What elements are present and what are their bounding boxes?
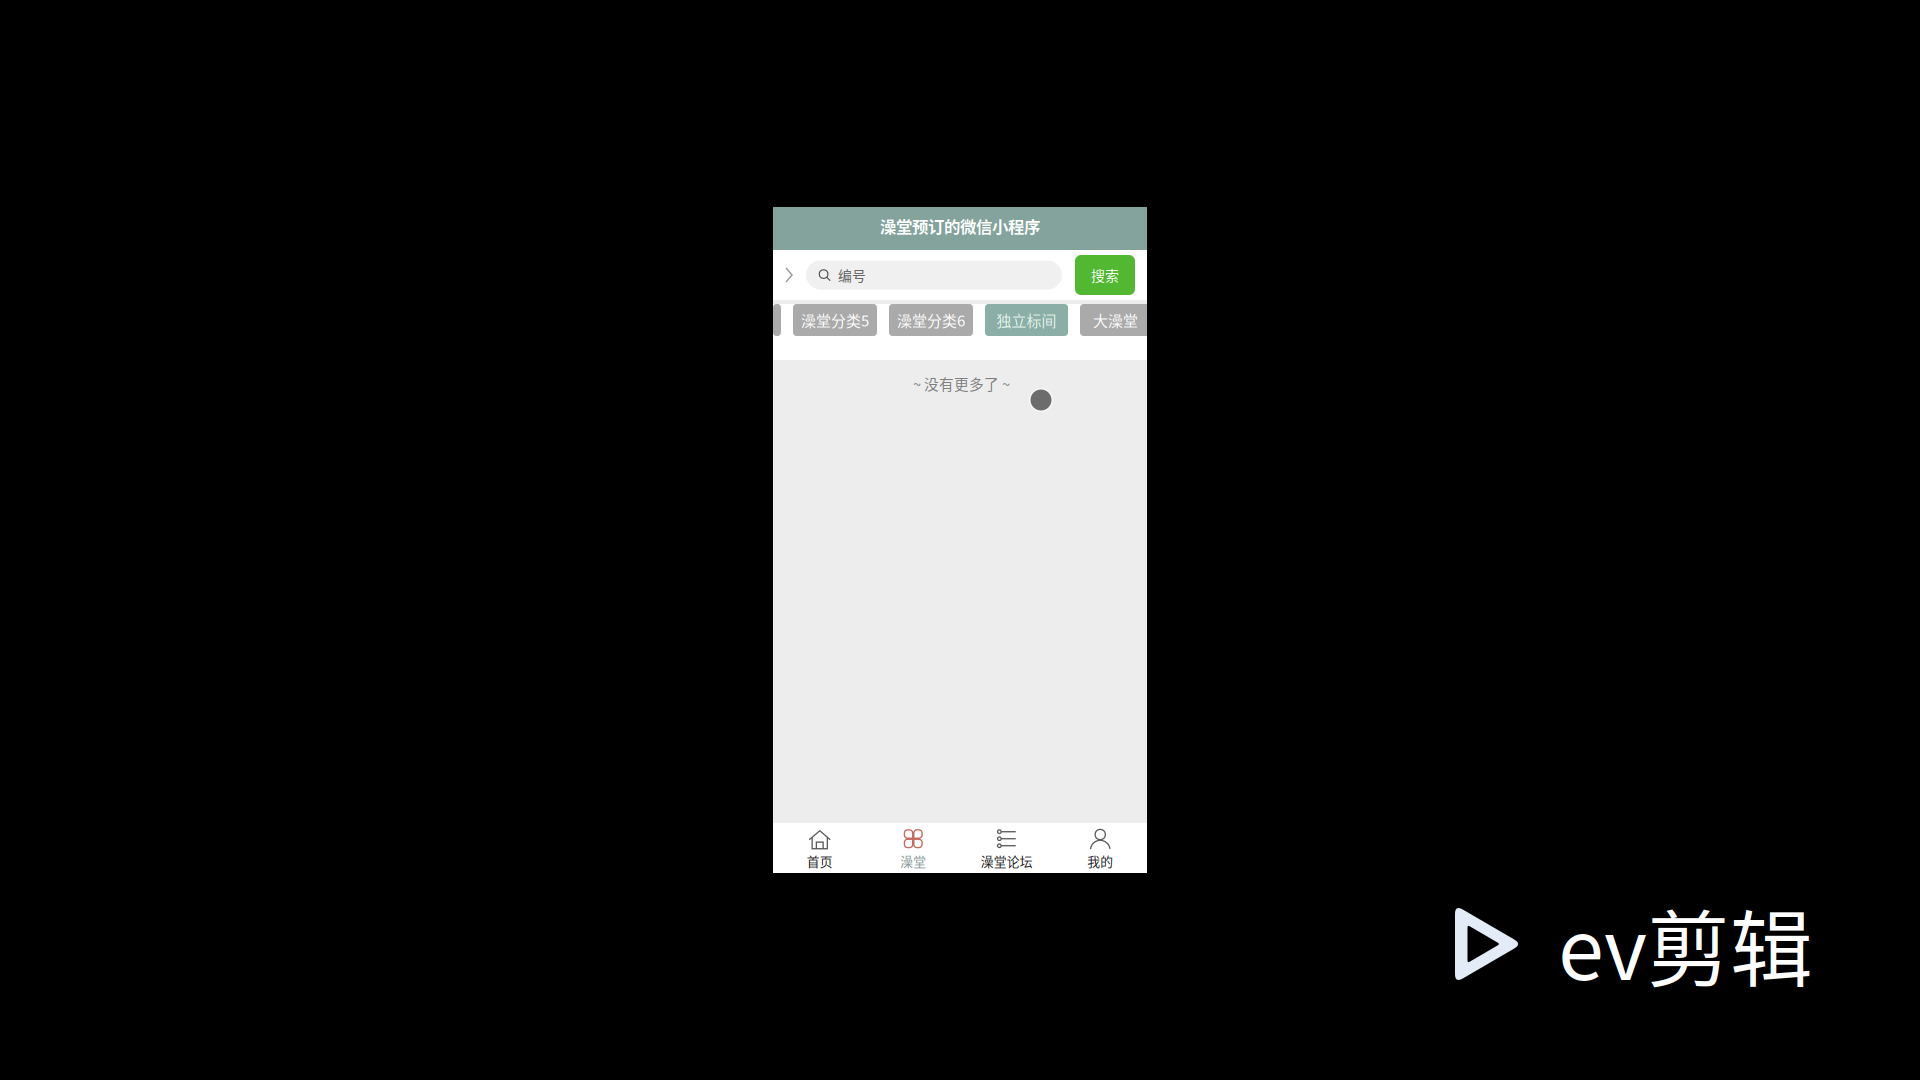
staticText: 首页 <box>807 852 833 870</box>
staticText: 澡堂分类5 <box>801 309 869 331</box>
button[interactable]: 大澡堂 <box>1080 304 1151 336</box>
button[interactable]: 首页 <box>773 823 866 873</box>
button[interactable]: 搜索 <box>1075 255 1135 295</box>
staticText: 澡堂论坛 <box>981 852 1033 870</box>
staticText: ~ 没有更多了 ~ <box>913 373 1010 394</box>
button[interactable]: 我的 <box>1053 823 1147 873</box>
staticText: 搜索 <box>1091 265 1119 285</box>
staticText: ev剪辑 <box>1558 884 1813 1004</box>
button[interactable]: 澡堂论坛 <box>960 823 1053 873</box>
button[interactable]: 澡堂分类6 <box>889 304 973 336</box>
button[interactable]: Search field <box>806 260 1062 289</box>
staticText: 澡堂分类6 <box>897 309 965 331</box>
button[interactable]: 澡堂 <box>866 823 960 873</box>
staticText: 编号 <box>838 265 866 285</box>
staticText: 我的 <box>1087 852 1113 870</box>
button[interactable]: 独立标间 <box>985 304 1068 336</box>
staticText: 澡堂预订的微信小程序 <box>880 214 1040 238</box>
staticText: 大澡堂 <box>1093 309 1138 331</box>
button[interactable]: 澡堂分类5 <box>793 304 877 336</box>
button[interactable]: Back <box>773 250 806 300</box>
staticText: 独立标间 <box>996 309 1056 331</box>
staticText: 澡堂 <box>900 852 926 870</box>
button[interactable] <box>773 304 781 336</box>
